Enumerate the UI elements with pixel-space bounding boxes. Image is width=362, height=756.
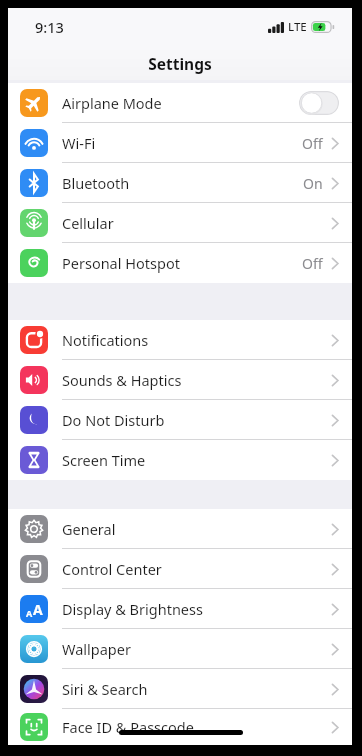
button[interactable]: Cellular [8,203,352,243]
staticText: Airplane Mode [62,93,299,113]
staticText: Off [302,254,323,273]
staticText: Bluetooth [62,173,303,193]
button[interactable]: Bluetooth [8,163,352,203]
staticText: LTE [288,19,307,35]
staticText: Settings [148,53,212,74]
staticText: A [26,607,33,619]
button[interactable]: Personal Hotspot [8,243,352,283]
staticText: 9:13 [35,17,64,37]
button[interactable]: Sounds & Haptics [8,360,352,400]
staticText: Siri & Search [62,679,331,699]
button[interactable]: Notifications [8,320,352,360]
button[interactable]: Control Center [8,549,352,589]
staticText: Sounds & Haptics [62,370,331,390]
button[interactable]: Siri & Search [8,669,352,709]
button[interactable]: Wi-Fi [8,123,352,163]
staticText: Face ID & Passcode [62,717,331,737]
staticText: Personal Hotspot [62,253,302,273]
button[interactable]: Airplane Mode [8,83,352,123]
staticText: Off [302,134,323,153]
staticText: Wi-Fi [62,133,302,153]
staticText: Notifications [62,330,331,350]
button[interactable]: A [8,589,352,629]
button[interactable]: Face ID & Passcode [8,709,352,745]
button[interactable]: General [8,509,352,549]
button[interactable]: Do Not Disturb [8,400,352,440]
staticText: Screen Time [62,450,331,470]
button[interactable]: Toggle Airplane Mode [299,91,339,115]
staticText: Control Center [62,559,331,579]
staticText: A [33,600,43,619]
staticText: On [303,174,323,193]
staticText: Do Not Disturb [62,410,331,430]
button[interactable]: Wallpaper [8,629,352,669]
button[interactable]: Screen Time [8,440,352,480]
staticText: Cellular [62,213,331,233]
staticText: General [62,519,331,539]
staticText: Display & Brightness [62,599,331,619]
staticText: Wallpaper [62,639,331,659]
